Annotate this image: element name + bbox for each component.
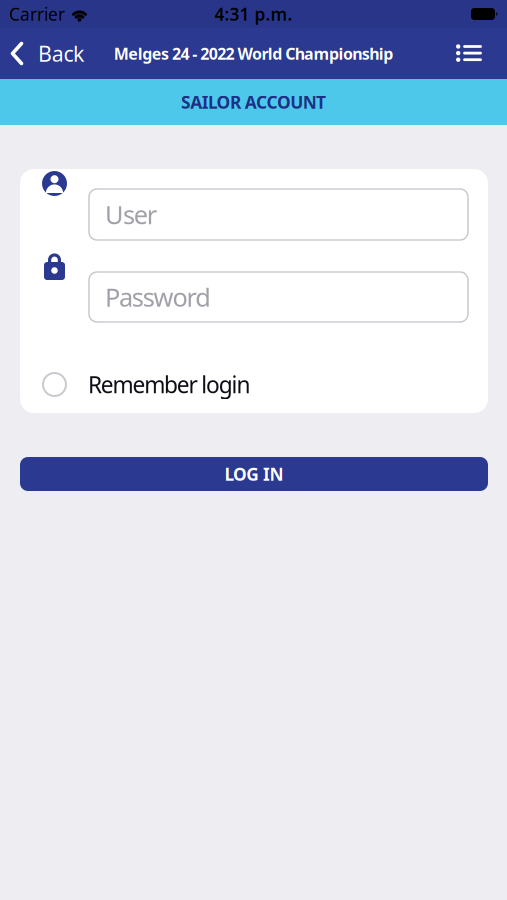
button[interactable]	[456, 43, 507, 63]
staticText: LOG IN	[224, 462, 283, 485]
staticText: Password	[105, 280, 211, 314]
button[interactable]: Back	[0, 28, 84, 79]
button[interactable]: User	[89, 189, 468, 240]
button[interactable]: Password	[89, 272, 468, 322]
staticText: Carrier	[9, 2, 65, 25]
staticText: Back	[38, 39, 84, 68]
button[interactable]: LOG IN	[20, 457, 488, 491]
staticText: SAILOR ACCOUNT	[181, 90, 326, 113]
staticText: 4:31 p.m.	[214, 2, 292, 25]
staticText: User	[105, 198, 157, 231]
staticText: Melges 24 - 2022 World Championship	[114, 43, 393, 64]
staticText: Remember login	[88, 369, 250, 399]
button[interactable]: Remember login	[20, 372, 488, 397]
